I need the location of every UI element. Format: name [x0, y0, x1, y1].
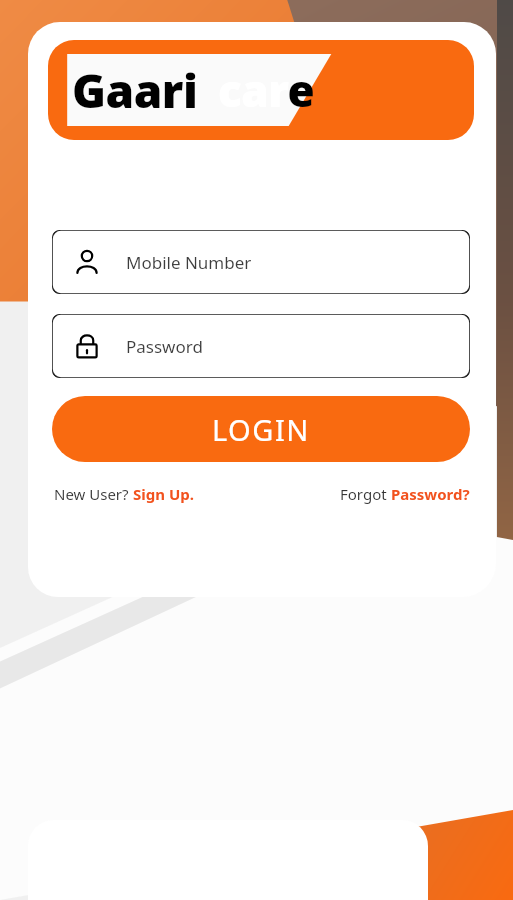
staticText: Sign Up. — [133, 484, 194, 504]
staticText: care — [218, 60, 315, 120]
staticText: New User? — [54, 484, 133, 504]
button[interactable]: Forgot — [340, 484, 470, 504]
staticText: Mobile Number — [126, 251, 252, 274]
staticText: Gaari — [72, 59, 198, 122]
button[interactable]: Gaari — [48, 40, 474, 140]
other: User — [74, 249, 100, 275]
button[interactable]: New User? — [54, 484, 194, 504]
staticText: Password? — [391, 484, 470, 504]
staticText: Forgot — [340, 484, 391, 504]
button[interactable]: Password — [52, 314, 470, 378]
button[interactable]: User — [52, 230, 470, 294]
other: Password — [74, 333, 100, 359]
staticText: LOGIN — [212, 410, 310, 449]
button[interactable]: LOGIN — [52, 396, 470, 462]
staticText: Password — [126, 335, 203, 358]
